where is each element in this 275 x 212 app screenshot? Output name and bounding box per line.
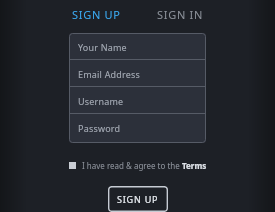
button[interactable]: Email Address [69,60,206,87]
button[interactable]: Username [69,87,206,114]
staticText: Username [78,95,124,107]
staticText: Password [78,122,121,134]
staticText: SIGN UP [117,193,159,205]
button[interactable]: Terms [182,160,207,171]
staticText: Email Address [78,68,141,80]
staticText: SIGN UP [72,7,121,22]
button[interactable]: Password [69,114,206,141]
staticText: Terms [182,160,207,171]
button[interactable]: SIGN IN [152,4,208,25]
button[interactable]: SIGN UP [67,4,126,25]
staticText: Your Name [78,41,127,53]
staticText: SIGN IN [157,7,203,22]
button[interactable]: SIGN UP [108,186,168,212]
staticText: I have read & agree to the [82,160,182,171]
button[interactable]: Your Name [69,33,206,60]
button[interactable]: Agree to terms checkbox [65,157,211,174]
